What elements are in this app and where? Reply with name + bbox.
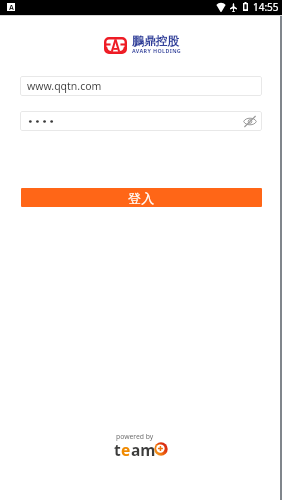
button[interactable]: www.qqtn.com (20, 76, 262, 96)
staticText: 登入 (128, 190, 155, 206)
button[interactable]: Show password (242, 114, 257, 129)
staticText: A (9, 3, 14, 11)
staticText: am (131, 439, 156, 460)
staticText: 鵬鼎控股 (132, 34, 180, 49)
button[interactable]: 登入 (21, 188, 262, 207)
staticText: 14:55 (253, 0, 279, 14)
staticText: www.qqtn.com (27, 79, 102, 93)
staticText: powered by (116, 432, 154, 441)
staticText: e (121, 439, 131, 460)
staticText: AVARY HOLDING (132, 47, 182, 54)
staticText: t (114, 439, 121, 460)
button[interactable]: Show password (20, 111, 262, 131)
